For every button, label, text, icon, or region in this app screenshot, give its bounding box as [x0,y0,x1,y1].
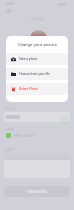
staticText: Change your picture [18,42,57,47]
staticText: Delete Photo [19,87,38,91]
staticText: Choose from your file [19,72,50,76]
button[interactable]: Delete Photo [6,83,68,95]
button[interactable]: Choose from your file [6,68,68,80]
staticText: Take a photo [19,57,38,61]
button[interactable]: Take a photo [6,53,68,65]
